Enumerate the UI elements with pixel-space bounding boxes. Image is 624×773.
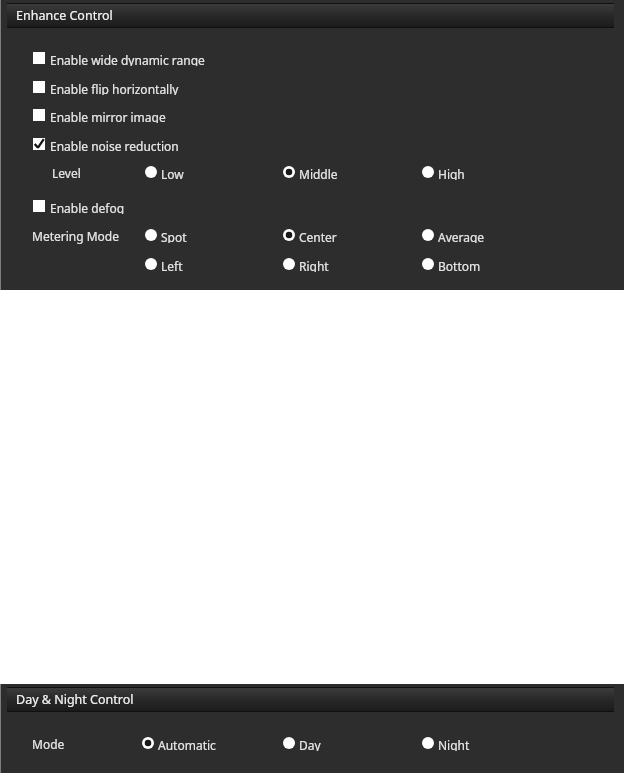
staticText: Enable noise reduction: [50, 138, 179, 152]
staticText: Average: [438, 229, 485, 243]
button[interactable]: Center: [283, 228, 337, 242]
staticText: Night: [438, 737, 470, 751]
staticText: Enable wide dynamic range: [50, 52, 205, 66]
staticText: Left: [161, 258, 183, 272]
button[interactable]: Enable defog: [33, 199, 125, 213]
staticText: Enable mirror image: [50, 109, 166, 123]
staticText: Center: [299, 229, 337, 243]
button[interactable]: Enable flip horizontally: [33, 80, 179, 94]
button[interactable]: Enable wide dynamic range: [33, 51, 205, 65]
button[interactable]: Middle: [283, 165, 338, 179]
button[interactable]: Day: [283, 736, 321, 750]
staticText: Low: [161, 166, 184, 180]
staticText: Level: [52, 165, 81, 181]
staticText: Metering Mode: [32, 228, 120, 244]
staticText: Day: [299, 737, 321, 751]
button[interactable]: Automatic: [142, 736, 216, 750]
staticText: Enable defog: [50, 200, 125, 214]
staticText: Right: [299, 258, 329, 272]
button[interactable]: Average: [422, 228, 485, 242]
button[interactable]: Enable mirror image: [33, 108, 166, 122]
staticText: Enhance Control: [16, 7, 113, 24]
button[interactable]: Left: [145, 257, 183, 271]
staticText: Bottom: [438, 258, 481, 272]
button[interactable]: Spot: [145, 228, 187, 242]
button[interactable]: Night: [422, 736, 470, 750]
button[interactable]: High: [422, 165, 465, 179]
staticText: Spot: [161, 229, 187, 243]
staticText: Middle: [299, 166, 338, 180]
button[interactable]: Bottom: [422, 257, 481, 271]
staticText: Enable flip horizontally: [50, 81, 179, 95]
staticText: High: [438, 166, 465, 180]
staticText: Day & Night Control: [16, 691, 134, 708]
button[interactable]: Right: [283, 257, 329, 271]
staticText: Automatic: [158, 737, 216, 751]
staticText: Mode: [32, 736, 65, 752]
button[interactable]: Low: [145, 165, 184, 179]
button[interactable]: Enable noise reduction: [33, 137, 179, 151]
